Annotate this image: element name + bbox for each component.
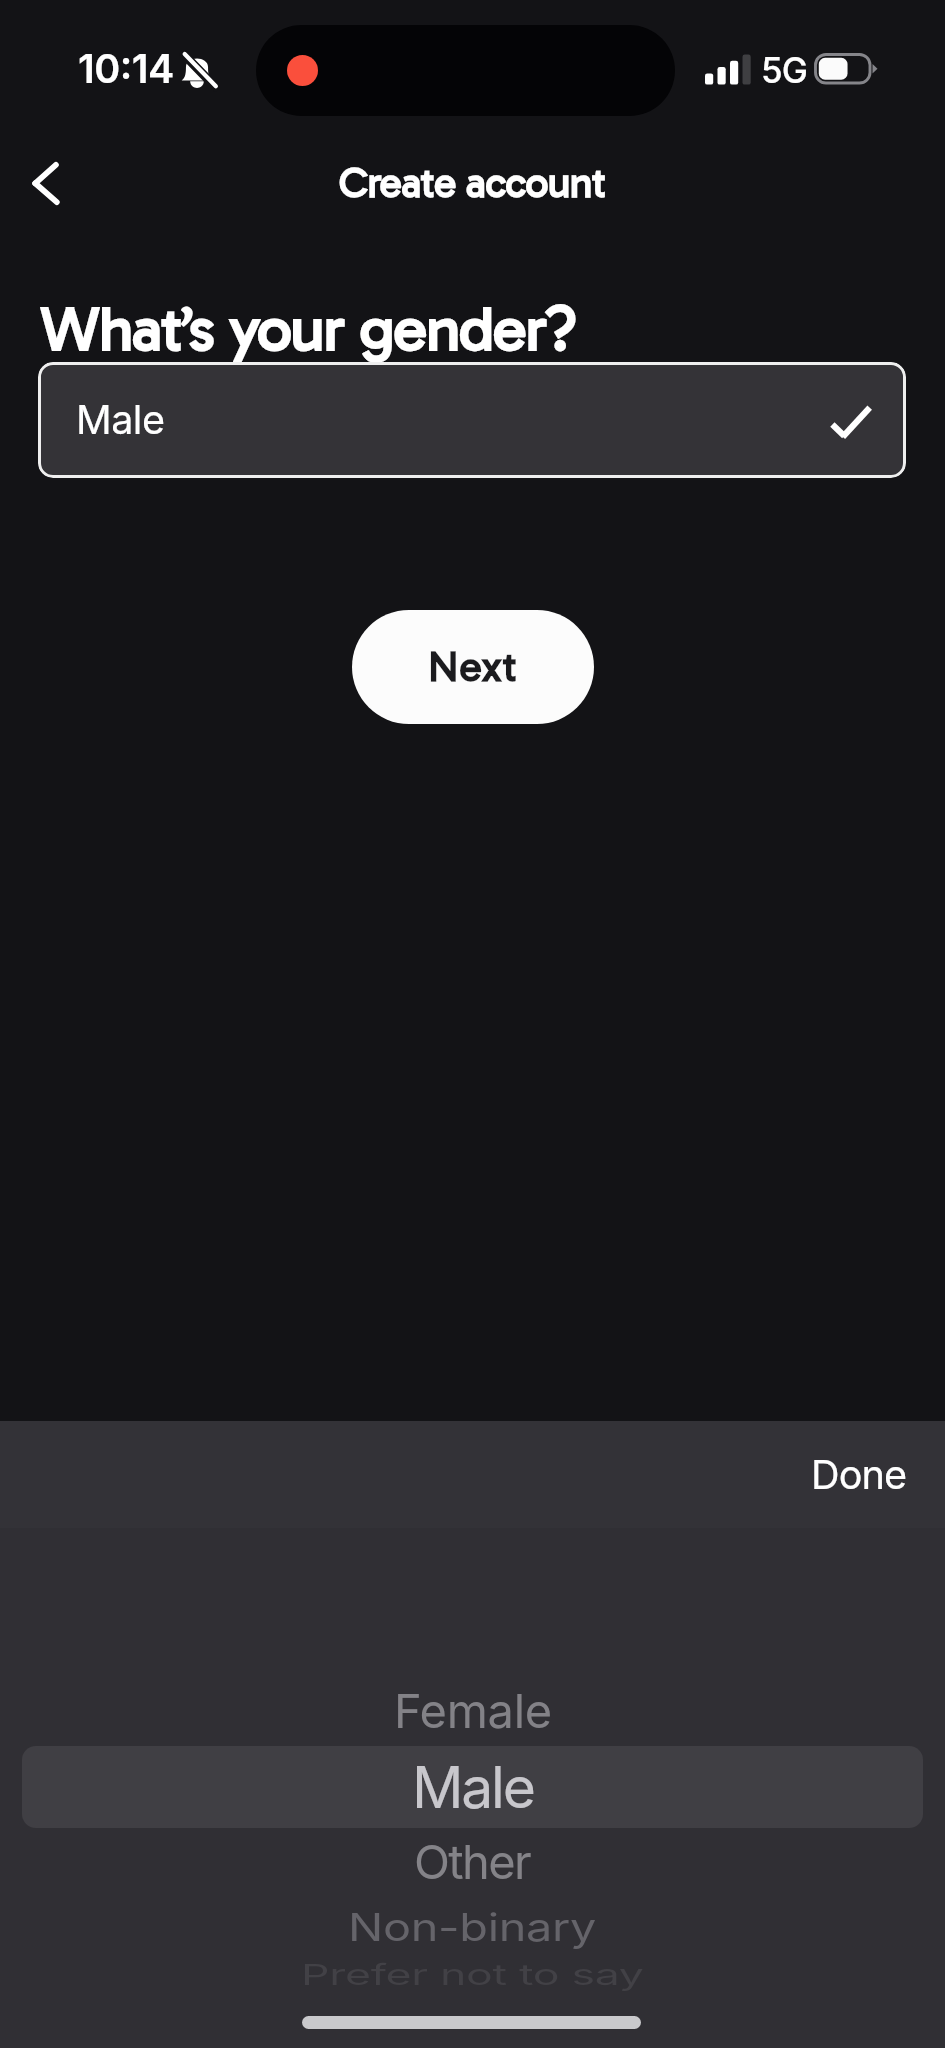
- button[interactable]: Male: [38, 362, 906, 478]
- button[interactable]: Other: [0, 1824, 945, 1899]
- staticText: Non-binary: [348, 1904, 597, 1951]
- button[interactable]: Prefer not to say: [0, 1939, 945, 2010]
- button[interactable]: Non-binary: [0, 1890, 945, 1965]
- staticText: Other: [414, 1833, 531, 1890]
- staticText: Create account: [339, 158, 606, 207]
- staticText: Prefer not to say: [301, 1958, 644, 1992]
- button[interactable]: Back: [12, 150, 80, 218]
- staticText: Male: [412, 1753, 534, 1822]
- button[interactable]: Done: [811, 1451, 907, 1499]
- staticText: Next: [428, 642, 518, 692]
- staticText: 5G: [761, 49, 808, 91]
- staticText: Done: [811, 1451, 907, 1499]
- staticText: Female: [394, 1682, 552, 1739]
- button[interactable]: Next: [352, 610, 594, 724]
- staticText: Male: [76, 396, 165, 444]
- staticText: What’s your gender?: [40, 292, 577, 367]
- button[interactable]: Male: [0, 1742, 945, 1833]
- staticText: 10:14: [78, 45, 174, 93]
- button[interactable]: Female: [0, 1673, 945, 1748]
